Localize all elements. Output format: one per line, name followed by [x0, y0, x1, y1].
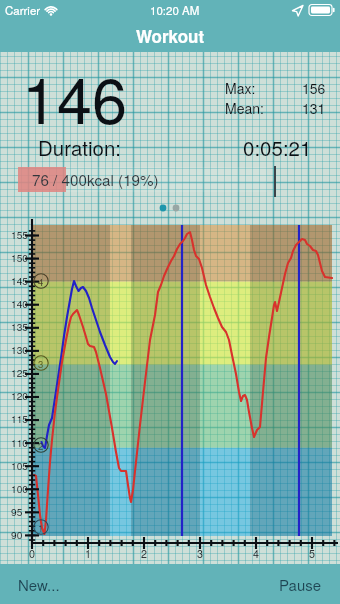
staticText: Pause	[279, 574, 322, 595]
staticText: 100	[11, 481, 28, 496]
staticText: Carrier	[5, 2, 41, 18]
staticText: 155	[11, 227, 28, 242]
staticText: Max:	[225, 78, 256, 98]
staticText: 115	[11, 411, 28, 426]
staticText: 150	[11, 250, 28, 265]
staticText: 2	[38, 439, 44, 453]
staticText: 0	[29, 546, 36, 561]
staticText: 1	[38, 521, 44, 535]
staticText: 4	[38, 275, 44, 289]
staticText: 10:20 AM	[150, 2, 200, 18]
staticText: 76 / 400kcal (19%)	[32, 169, 159, 191]
staticText: 146	[22, 52, 128, 142]
staticText: 95	[11, 504, 23, 519]
staticText: 90	[11, 527, 23, 542]
staticText: Workout	[136, 24, 205, 48]
staticText: 110	[11, 435, 28, 450]
button[interactable]: Pause	[269, 567, 332, 602]
staticText: 145	[11, 273, 28, 288]
staticText: 125	[11, 365, 28, 380]
staticText: 140	[11, 296, 28, 311]
staticText: 3	[197, 546, 204, 561]
staticText: 2	[141, 546, 148, 561]
staticText: New...	[18, 574, 60, 595]
staticText: 3	[38, 357, 44, 371]
staticText: 1	[85, 546, 92, 561]
staticText: 0:05:21	[243, 132, 312, 161]
staticText: 135	[11, 319, 28, 334]
staticText: 156	[302, 78, 326, 98]
staticText: 5	[309, 546, 316, 561]
staticText: Duration:	[38, 132, 122, 161]
staticText: 130	[11, 342, 28, 357]
staticText: 105	[11, 458, 28, 473]
button[interactable]: 76 / 400kcal (19%)	[18, 167, 267, 192]
staticText: 131	[302, 98, 326, 118]
staticText: 4	[253, 546, 260, 561]
staticText: Mean:	[225, 98, 264, 118]
staticText: 120	[11, 388, 28, 403]
button[interactable]: New...	[8, 567, 70, 602]
